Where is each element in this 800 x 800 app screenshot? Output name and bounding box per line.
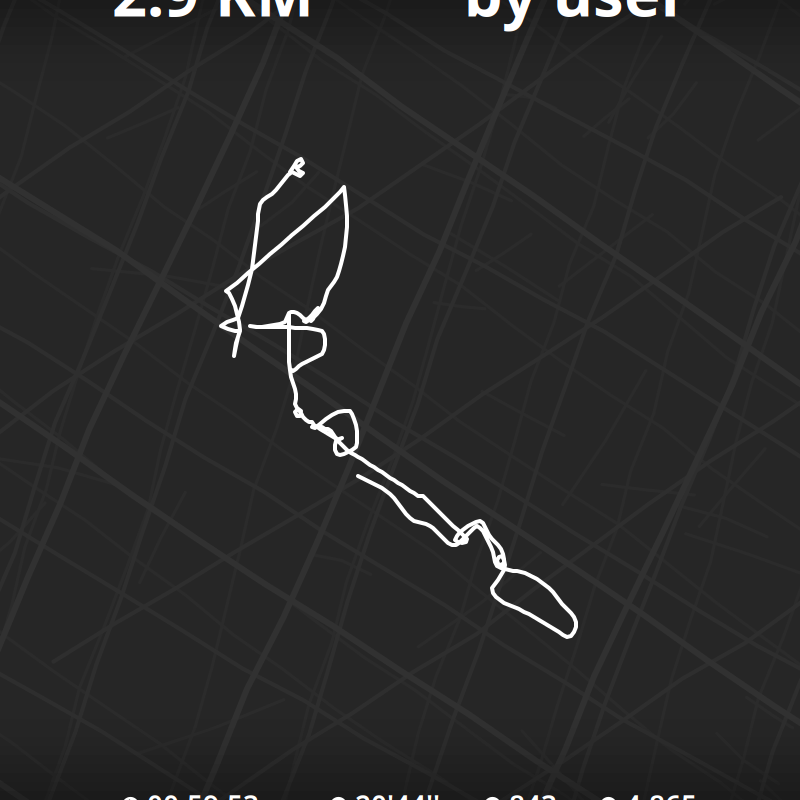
staticText: by user <box>464 0 688 33</box>
staticText: 00:59:53 <box>147 787 259 800</box>
staticText: 2.9 KM <box>112 0 314 33</box>
staticText: 843 <box>509 787 557 800</box>
staticText: 20'44'' <box>355 787 440 800</box>
staticText: 4,865 <box>625 787 697 800</box>
